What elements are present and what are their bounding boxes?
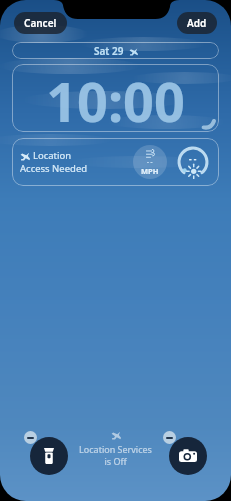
staticText: is Off [104,455,127,467]
staticText: 10:00 [46,64,185,132]
button[interactable]: Camera [169,437,207,475]
staticText: - - [189,153,197,164]
button[interactable]: Wind speed complication [133,145,167,179]
button[interactable]: Add [177,12,217,34]
staticText: - - [147,158,153,166]
staticText: Sat 29 [94,44,124,58]
staticText: MPH [141,166,159,176]
button[interactable]: UV index complication [175,144,211,180]
button[interactable]: Remove Flashlight [24,431,37,444]
button[interactable]: Sat 29 [12,42,219,59]
staticText: Location [33,149,72,162]
staticText: Add [187,16,207,30]
button[interactable]: 10:00 [12,64,219,132]
staticText: Location Services [79,443,152,455]
button[interactable]: Flashlight [30,437,68,475]
button[interactable]: Remove Camera [163,431,176,444]
staticText: Access Needed [20,162,88,175]
staticText: Cancel [24,16,57,30]
button[interactable]: Cancel [14,12,67,34]
button[interactable]: Location [12,138,219,186]
